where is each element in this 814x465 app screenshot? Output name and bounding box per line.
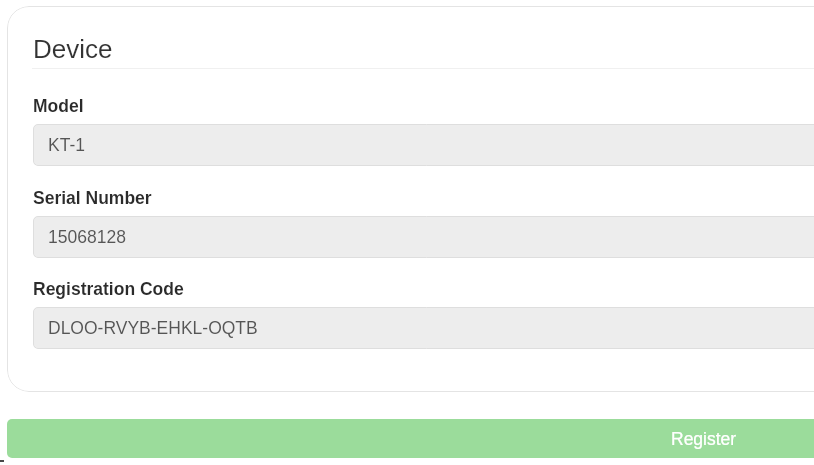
button[interactable]: Register (7, 419, 814, 458)
staticText: Device (33, 34, 113, 63)
staticText: DLOO-RVYB-EHKL-OQTB (48, 318, 258, 338)
staticText: Model (33, 96, 84, 116)
button[interactable]: DLOO-RVYB-EHKL-OQTB (33, 307, 814, 349)
staticText: Registration Code (33, 279, 184, 299)
button[interactable]: 15068128 (33, 216, 814, 258)
staticText: Register (671, 429, 737, 449)
button[interactable]: KT-1 (33, 124, 814, 166)
staticText: KT-1 (48, 135, 85, 155)
staticText: 15068128 (48, 227, 126, 247)
staticText: Serial Number (33, 188, 152, 208)
